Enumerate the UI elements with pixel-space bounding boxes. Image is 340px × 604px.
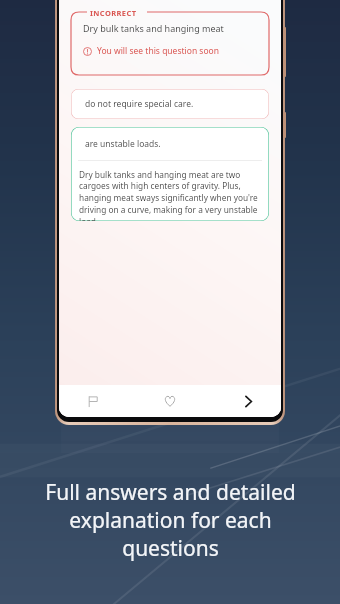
button[interactable]: Report question [79, 388, 105, 414]
button[interactable]: Next question [235, 388, 261, 414]
staticText: You will see this question soon [97, 45, 219, 57]
staticText: INCORRECT [90, 8, 137, 18]
button[interactable]: are unstable loads. [71, 127, 269, 221]
button[interactable]: do not require special care. [71, 89, 269, 119]
staticText: are unstable loads. [85, 138, 161, 150]
staticText: do not require special care. [85, 98, 194, 110]
button[interactable]: INCORRECT [71, 6, 269, 75]
button[interactable]: Favorite [157, 388, 183, 414]
staticText: Dry bulk tanks and hanging meat [83, 22, 224, 34]
staticText: Dry bulk tanks and hanging meat are two … [79, 169, 261, 221]
staticText: Full answers and detailed explanation fo… [45, 478, 296, 562]
